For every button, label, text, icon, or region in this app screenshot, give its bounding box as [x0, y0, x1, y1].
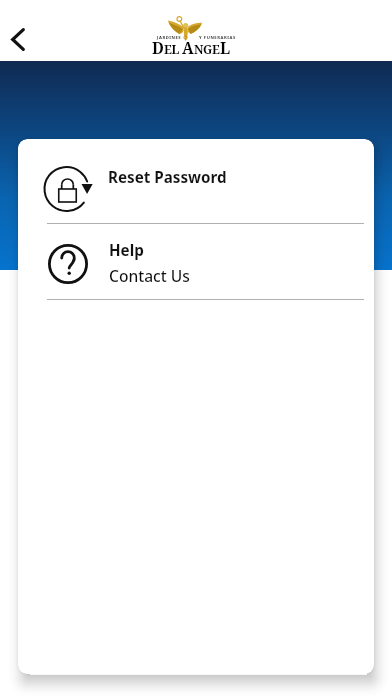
staticText: Contact Us — [109, 265, 190, 286]
staticText: D — [152, 37, 164, 58]
staticText: Y FUNERARIAS — [199, 35, 236, 41]
staticText: Reset Password — [108, 167, 227, 188]
staticText: Help — [109, 240, 144, 261]
staticText: EL — [164, 41, 179, 57]
staticText: NGE — [194, 41, 220, 57]
button[interactable]: Help — [18, 224, 374, 299]
staticText: JARDINES — [157, 35, 182, 41]
button[interactable]: Reset Password — [18, 139, 374, 223]
staticText: L — [220, 37, 230, 58]
staticText: A — [182, 37, 194, 58]
button[interactable]: Back — [0, 19, 37, 61]
